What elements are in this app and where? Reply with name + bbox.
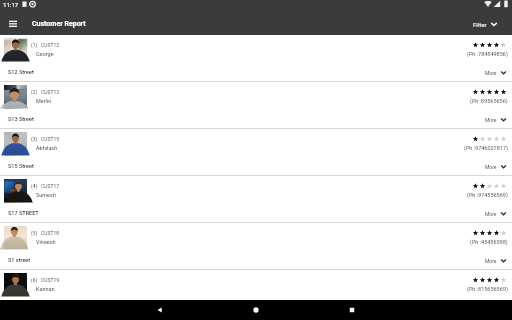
staticText: More (485, 258, 497, 264)
staticText: Customer Report (32, 20, 86, 28)
staticText: (4) CUST17 (31, 183, 60, 189)
button[interactable]: More (485, 116, 507, 123)
staticText: Vineesh (36, 239, 56, 245)
staticText: Abhilash (36, 145, 58, 151)
staticText: Kannan (36, 286, 55, 292)
staticText: (Ph :45456598) (470, 239, 508, 245)
button[interactable]: Home (208, 300, 304, 320)
staticText: George (36, 51, 54, 57)
staticText: More (485, 164, 497, 170)
staticText: (2) CUST13 (31, 89, 60, 95)
button[interactable]: More (485, 69, 507, 76)
button[interactable]: Filter (473, 20, 498, 28)
button[interactable]: (3) CUST15 (0, 129, 512, 176)
staticText: S12 Street (8, 69, 34, 75)
staticText: More (485, 117, 497, 123)
staticText: More (485, 70, 497, 76)
button[interactable]: (4) CUST17 (0, 176, 512, 223)
staticText: Sumesh (36, 192, 56, 198)
staticText: (6) CUST19 (31, 277, 60, 283)
staticText: (Ph :9746027817) (464, 145, 508, 151)
staticText: Filter (473, 21, 487, 28)
staticText: S13 Street (8, 116, 34, 122)
staticText: (5) CUST18 (31, 230, 60, 236)
button[interactable]: Open navigation menu (5, 16, 21, 32)
staticText: S1 street (8, 257, 31, 263)
staticText: (Ph :815656569) (467, 286, 508, 292)
button[interactable]: More (485, 163, 507, 170)
button[interactable]: (1) CUST12 (0, 35, 512, 82)
button[interactable]: Back (112, 300, 208, 320)
button[interactable]: (5) CUST18 (0, 223, 512, 270)
button[interactable]: More (485, 210, 507, 217)
staticText: (Ph :974556569) (467, 192, 508, 198)
staticText: (Ph :784549856) (467, 51, 508, 57)
staticText: More (485, 211, 497, 217)
staticText: S15 Street (8, 163, 34, 169)
staticText: Merlin (36, 98, 52, 104)
button[interactable]: (2) CUST13 (0, 82, 512, 129)
staticText: S17 STREET (8, 210, 39, 216)
staticText: 11:17 (3, 1, 19, 8)
staticText: (1) CUST12 (31, 42, 60, 48)
button[interactable]: More (485, 257, 507, 264)
button[interactable]: (6) CUST19 (0, 270, 512, 300)
button[interactable]: Recent apps (304, 300, 400, 320)
staticText: (3) CUST15 (31, 136, 60, 142)
staticText: (Ph :89565656) (470, 98, 508, 104)
